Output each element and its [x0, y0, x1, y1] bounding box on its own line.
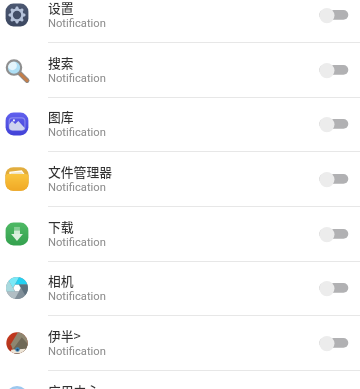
- button[interactable]: Notification toggle for 图库: [312, 109, 356, 139]
- staticText: Notification: [48, 345, 106, 358]
- button[interactable]: 设置: [0, 0, 360, 43]
- staticText: Notification: [48, 236, 106, 249]
- button[interactable]: Notification toggle for 搜索: [312, 55, 356, 85]
- staticText: Notification: [48, 290, 106, 303]
- staticText: 设置: [48, 0, 74, 17]
- button[interactable]: Notification toggle for 文件管理器: [312, 164, 356, 194]
- button[interactable]: 文件管理器: [0, 152, 360, 207]
- button[interactable]: Notification toggle for 下载: [312, 219, 356, 249]
- button[interactable]: 伊半>: [0, 316, 360, 371]
- button[interactable]: Notification toggle for 设置: [312, 0, 356, 30]
- staticText: 应用中心: [48, 381, 100, 389]
- staticText: 相机: [48, 271, 74, 290]
- staticText: Notification: [48, 126, 106, 139]
- button[interactable]: 搜索: [0, 43, 360, 98]
- staticText: 下载: [48, 217, 74, 236]
- staticText: Notification: [48, 72, 106, 85]
- staticText: Notification: [48, 181, 106, 194]
- staticText: 伊半>: [48, 326, 81, 345]
- staticText: Notification: [48, 17, 106, 30]
- staticText: 图库: [48, 107, 74, 126]
- button[interactable]: 相机: [0, 261, 360, 316]
- button[interactable]: Notification toggle for 伊半>: [312, 328, 356, 358]
- staticText: 搜索: [48, 53, 74, 72]
- staticText: 文件管理器: [48, 162, 112, 181]
- button[interactable]: 下载: [0, 207, 360, 262]
- button[interactable]: 应用中心: [0, 371, 360, 389]
- button[interactable]: Notification toggle for 相机: [312, 273, 356, 303]
- button[interactable]: 图库: [0, 97, 360, 152]
